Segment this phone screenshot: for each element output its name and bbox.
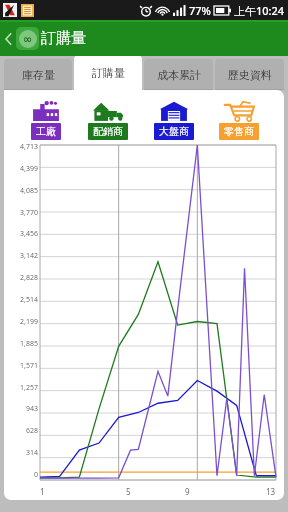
staticText: 4,713 <box>20 142 38 152</box>
staticText: 零售商 <box>224 125 254 138</box>
staticText: 上午10:24 <box>234 3 285 18</box>
staticText: 628 <box>25 426 38 436</box>
staticText: 4,399 <box>20 164 38 174</box>
staticText: 2,828 <box>20 273 38 283</box>
staticText: 943 <box>25 404 38 414</box>
button[interactable]: 工廠 <box>28 100 64 140</box>
button[interactable]: 庫存量 <box>4 59 72 90</box>
staticText: 大盤商 <box>159 125 189 138</box>
staticText: 1 <box>40 486 45 497</box>
staticText: 3,770 <box>20 208 38 218</box>
staticText: 歷史資料 <box>228 68 272 82</box>
staticText: ∞ <box>23 33 33 46</box>
staticText: 庫存量 <box>22 68 55 82</box>
button[interactable]: 歷史資料 <box>215 59 284 90</box>
button[interactable]: Back <box>0 27 49 50</box>
staticText: 3,456 <box>20 229 38 239</box>
staticText: 配銷商 <box>93 125 123 138</box>
staticText: 13 <box>266 486 276 497</box>
staticText: 訂購量 <box>92 66 125 80</box>
staticText: 2,199 <box>20 317 38 327</box>
staticText: 5 <box>126 486 131 497</box>
button[interactable]: 成本累計 <box>144 59 213 90</box>
button[interactable]: 零售商 <box>218 100 260 140</box>
staticText: 1,571 <box>20 361 38 371</box>
staticText: 9 <box>185 486 190 497</box>
staticText: 77% <box>189 3 211 18</box>
staticText: 0 <box>33 470 38 480</box>
staticText: 2,514 <box>20 295 38 305</box>
staticText: 1,885 <box>20 339 38 349</box>
staticText: 314 <box>25 448 38 458</box>
staticText: 工廠 <box>36 125 56 138</box>
button[interactable]: 大盤商 <box>153 100 195 140</box>
button[interactable]: 配銷商 <box>87 100 129 140</box>
staticText: 1,257 <box>20 383 38 393</box>
staticText: 4,085 <box>20 186 38 196</box>
button[interactable]: 訂購量 <box>74 56 142 90</box>
staticText: 3,142 <box>20 251 38 261</box>
staticText: 成本累計 <box>157 68 201 82</box>
staticText: 訂購量 <box>41 29 86 48</box>
